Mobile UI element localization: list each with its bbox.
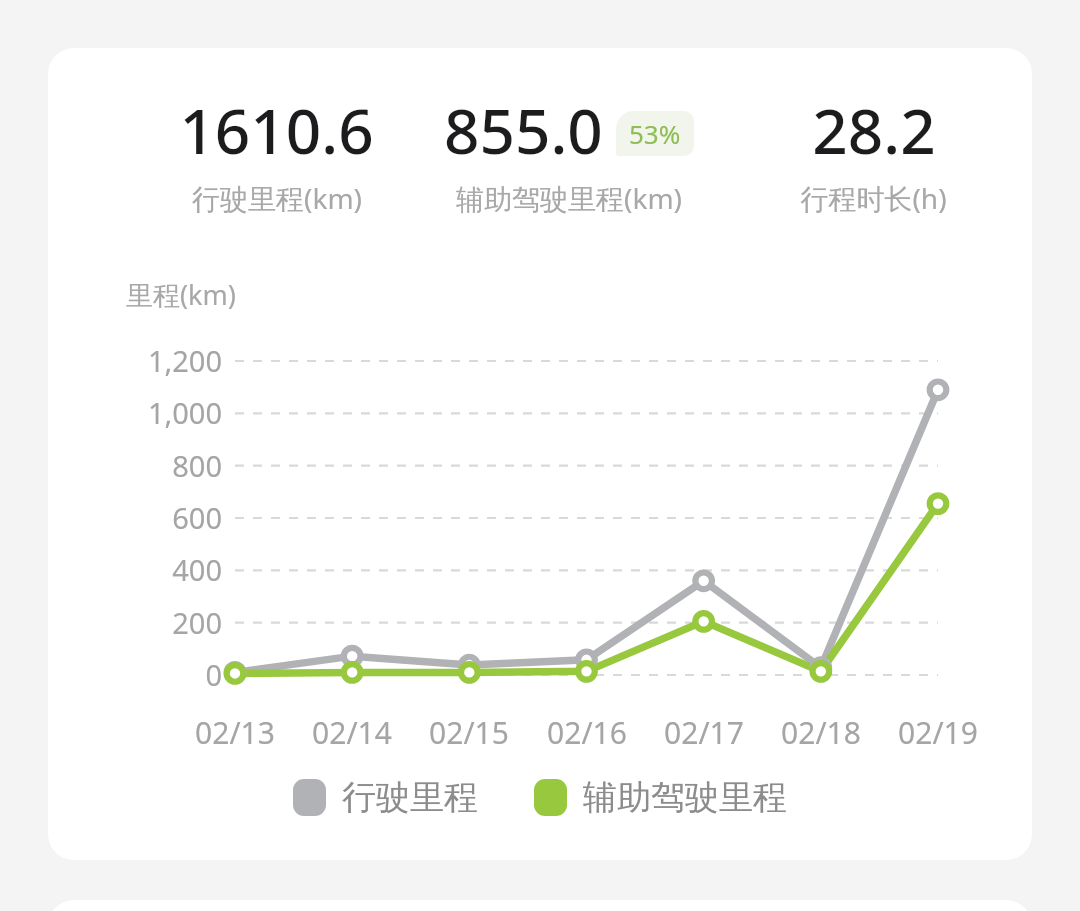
staticText: 02/15 [429,712,509,753]
staticText: 02/14 [312,712,392,753]
staticText: 0 [205,655,222,694]
staticText: 855.0 [444,88,603,172]
button[interactable]: 辅助驾驶里程 [534,776,787,819]
button[interactable]: 1610.6 [48,48,1032,860]
staticText: 1,200 [147,341,222,380]
staticText: 400 [172,550,222,589]
staticText: 辅助驾驶里程 [583,776,787,819]
staticText: 28.2 [812,88,936,172]
staticText: 200 [172,603,222,642]
button[interactable]: 855.0 [404,88,734,217]
button[interactable]: 行驶里程 [293,776,478,819]
staticText: 600 [172,498,222,537]
button[interactable]: 28.2 [748,88,998,217]
other: Mileage line chart [48,48,1032,860]
staticText: 53% [629,116,681,151]
staticText: 辅助驾驶里程(km) [456,179,682,217]
staticText: 02/13 [195,712,275,753]
staticText: 02/16 [547,712,627,753]
staticText: 行驶里程(km) [192,179,362,217]
staticText: 1610.6 [179,88,374,172]
staticText: 行程时长(h) [800,179,947,217]
button[interactable]: 1610.6 [130,88,422,217]
staticText: 800 [172,446,222,485]
staticText: 02/19 [898,712,978,753]
staticText: 里程(km) [126,276,236,313]
staticText: 行驶里程 [342,776,478,819]
staticText: 02/17 [664,712,744,753]
staticText: 1,000 [147,393,222,432]
staticText: 02/18 [781,712,861,753]
